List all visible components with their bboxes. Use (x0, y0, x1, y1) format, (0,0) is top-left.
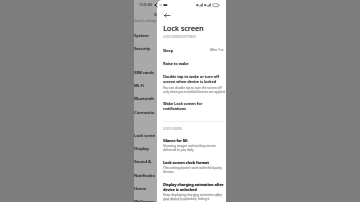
staticText: Search settings (134, 19, 157, 23)
button[interactable]: Wallpaper (134, 194, 157, 202)
staticText: Display charging animation after device … (163, 182, 226, 192)
button[interactable]: Display (134, 141, 157, 154)
staticText: Wallpaper (134, 198, 155, 202)
staticText: Lock scree (134, 132, 155, 138)
staticText: Sleep (163, 48, 174, 53)
staticText: After 1 m (210, 48, 224, 52)
staticText: s (154, 10, 157, 18)
staticText: Wi-Fi (134, 82, 144, 88)
button[interactable]: Lock scree (134, 128, 157, 141)
staticText: Bluetooth (134, 95, 154, 101)
button[interactable]: Notification (134, 168, 157, 181)
button[interactable]: Wake Lock screen for notifications (157, 100, 226, 114)
button[interactable]: Sleep (157, 45, 226, 56)
staticText: System app (134, 32, 157, 38)
staticText: Notification (134, 172, 157, 178)
staticText: LOCK SCREEN SETTINGS (163, 35, 196, 39)
button[interactable]: Wi-Fi (134, 78, 157, 91)
staticText: Raise to wake (163, 61, 189, 66)
staticText: Lock screen clock format (163, 160, 209, 165)
staticText: Display (134, 145, 149, 151)
button[interactable]: Back (162, 10, 172, 20)
staticText: This setting doesn't work with third-par… (163, 166, 226, 174)
staticText: Connection (134, 109, 157, 115)
button[interactable]: Home scree (134, 181, 157, 194)
staticText: Lock screen (163, 23, 204, 33)
staticText: Wake Lock screen for notifications (163, 101, 205, 111)
staticText: Home scree (134, 185, 157, 191)
button[interactable]: SIM cards & (134, 65, 157, 78)
staticText: Stunning images and exciting stories del… (163, 144, 226, 152)
staticText: Sound & vib (134, 158, 157, 164)
button[interactable]: Lock screen clock format (157, 158, 226, 176)
button[interactable]: System app (134, 28, 157, 41)
staticText: Security sta (134, 45, 157, 51)
staticText: Double tap to wake or turn off screen wh… (163, 74, 221, 84)
button[interactable]: Sound & vib (134, 154, 157, 167)
staticText: LOCK SCREEN (163, 127, 182, 131)
button[interactable]: Double tap to wake or turn off screen wh… (157, 73, 226, 95)
staticText: 10:45 AM (139, 3, 153, 7)
button[interactable]: Security sta (134, 41, 157, 54)
button[interactable]: Connection (134, 105, 157, 118)
staticText: Keep displaying charging animation after… (163, 193, 226, 201)
staticText: SIM cards & (134, 69, 157, 75)
staticText: You can double tap to turn the screen of… (163, 86, 226, 94)
button[interactable]: Bluetooth (134, 91, 157, 104)
staticText: Glance for Mi (163, 138, 188, 143)
button[interactable]: Glance for Mi (157, 136, 226, 154)
button[interactable]: Display charging animation after device … (157, 180, 226, 202)
button[interactable]: Raise to wake (157, 58, 226, 69)
